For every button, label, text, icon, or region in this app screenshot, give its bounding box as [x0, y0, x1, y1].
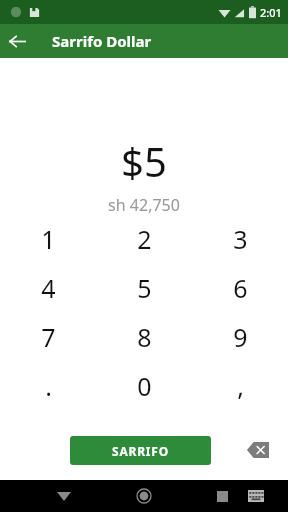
button[interactable]: Back: [0, 24, 34, 58]
staticText: 2:01: [260, 5, 282, 20]
staticText: 8: [137, 320, 152, 354]
staticText: 4: [41, 271, 56, 305]
button[interactable]: 7: [0, 312, 96, 361]
button[interactable]: 4: [0, 263, 96, 312]
button[interactable]: Backspace: [240, 432, 276, 468]
staticText: Sarrifo Dollar: [52, 31, 152, 51]
staticText: SARRIFO: [112, 443, 170, 459]
staticText: sh 42,750: [108, 194, 180, 216]
staticText: .: [45, 369, 52, 403]
button[interactable]: 0: [96, 361, 192, 410]
staticText: 6: [233, 271, 248, 305]
staticText: 9: [233, 320, 248, 354]
button[interactable]: ,: [192, 361, 288, 410]
staticText: 2: [137, 222, 152, 256]
button[interactable]: 3: [192, 214, 288, 263]
staticText: 1: [41, 222, 56, 256]
button[interactable]: Home: [128, 480, 160, 512]
button[interactable]: 9: [192, 312, 288, 361]
button[interactable]: Back: [48, 480, 80, 512]
button[interactable]: 6: [192, 263, 288, 312]
staticText: $5: [121, 134, 167, 188]
button[interactable]: 1: [0, 214, 96, 263]
staticText: 5: [137, 271, 152, 305]
staticText: 3: [233, 222, 248, 256]
button[interactable]: 5: [96, 263, 192, 312]
button[interactable]: .: [0, 361, 96, 410]
button[interactable]: Switch keyboard: [240, 480, 272, 512]
button[interactable]: 8: [96, 312, 192, 361]
button[interactable]: Recent apps: [206, 480, 238, 512]
staticText: 0: [137, 369, 152, 403]
staticText: 7: [41, 320, 56, 354]
button[interactable]: SARRIFO: [70, 436, 211, 465]
staticText: ,: [237, 369, 244, 403]
button[interactable]: 2: [96, 214, 192, 263]
